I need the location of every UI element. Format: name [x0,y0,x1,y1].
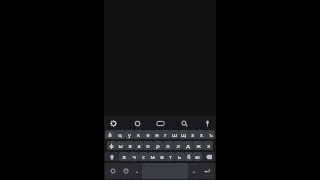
button[interactable]: р [153,141,163,150]
staticText: я [122,153,126,160]
staticText: л [176,142,180,149]
button[interactable]: Symbols [105,163,120,179]
staticText: ь [178,153,181,160]
button[interactable]: ф [107,141,116,150]
button[interactable]: ы [116,141,125,150]
staticText: б [187,153,191,160]
button[interactable]: м [148,152,157,161]
button[interactable]: э [203,141,213,150]
button[interactable]: Backspace [202,152,215,161]
button[interactable]: х [197,130,206,139]
staticText: ч [132,153,136,160]
button[interactable]: у [125,130,134,139]
staticText: д [186,142,190,149]
button[interactable]: а [134,141,143,150]
staticText: а [137,142,141,149]
button[interactable]: и [157,152,166,161]
staticText: н [155,131,159,138]
button[interactable]: к [134,130,143,139]
staticText: с [142,153,145,160]
staticText: ы [118,142,123,149]
button[interactable]: ц [115,130,125,139]
staticText: т [169,153,172,160]
staticText: и [160,153,164,160]
staticText: ц [118,131,122,138]
button[interactable]: в [125,141,134,150]
staticText: ф [109,142,114,149]
staticText: щ [181,131,186,138]
button[interactable]: н [152,130,161,139]
button[interactable]: п [143,141,153,150]
button[interactable]: ш [170,130,179,139]
button[interactable]: г [161,130,170,139]
button[interactable]: щ [179,130,188,139]
button[interactable]: з [188,130,197,139]
button[interactable]: ж [193,141,203,150]
button[interactable]: Voice input [201,117,213,129]
button[interactable]: д [183,141,193,150]
button[interactable]: Comma [131,163,142,179]
button[interactable]: ь [175,152,184,161]
button[interactable]: Stickers [131,117,143,129]
staticText: м [150,153,155,160]
button[interactable]: с [139,152,148,161]
button[interactable]: л [173,141,183,150]
staticText: р [156,142,160,149]
staticText: й [108,131,112,138]
staticText: п [146,142,150,149]
button[interactable]: б [184,152,193,161]
staticText: в [128,142,132,149]
button[interactable]: GIF [154,117,166,129]
button[interactable]: Settings [107,117,119,129]
button[interactable]: т [166,152,175,161]
button[interactable]: ю [193,152,202,161]
button[interactable]: Period [188,163,199,179]
button[interactable]: е [143,130,152,139]
button[interactable]: Shift [105,152,119,161]
staticText: ж [196,142,201,149]
staticText: у [128,131,131,138]
button[interactable]: я [119,152,129,161]
staticText: з [191,131,194,138]
button[interactable]: й [105,130,115,139]
staticText: г [164,131,167,138]
staticText: о [166,142,170,149]
staticText: ш [172,131,177,138]
button[interactable]: о [163,141,173,150]
staticText: э [207,142,210,149]
button[interactable]: Emoji [120,163,131,179]
staticText: ъ [209,131,213,138]
button[interactable]: ч [129,152,139,161]
button[interactable]: ъ [206,130,215,139]
staticText: е [146,131,150,138]
staticText: ю [195,153,200,160]
staticText: х [200,131,203,138]
button[interactable]: Enter [199,163,215,179]
staticText: к [137,131,140,138]
button[interactable]: Search [178,117,190,129]
